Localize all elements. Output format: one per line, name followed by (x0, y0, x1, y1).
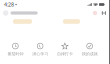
staticText: 我的成就 (82, 51, 98, 56)
staticText: 番茄时钟 (7, 51, 23, 56)
button[interactable]: 我的成就 (77, 42, 102, 56)
staticText: 自律打卡 (57, 51, 73, 56)
button[interactable]: 番茄时钟 (3, 42, 28, 56)
staticText: 4:28 (4, 1, 14, 8)
button[interactable]: Menu (102, 11, 106, 15)
staticText: 潜心学习 (32, 51, 48, 56)
button[interactable]: 自律打卡 (52, 42, 77, 56)
button[interactable]: 潜心学习 (28, 42, 53, 56)
